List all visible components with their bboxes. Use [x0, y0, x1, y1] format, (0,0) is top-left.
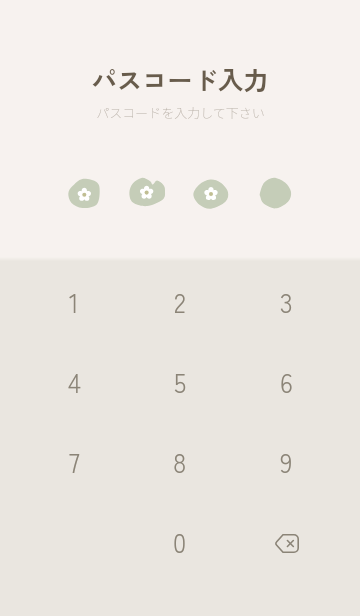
button[interactable]: 2	[127, 262, 233, 342]
staticText: 4	[68, 363, 81, 401]
button[interactable]: Backspace	[233, 502, 339, 582]
staticText: パスコード入力	[91, 61, 269, 98]
button[interactable]: 9	[233, 422, 339, 502]
other: Backspace	[274, 534, 299, 553]
button[interactable]: 7	[21, 422, 127, 502]
staticText: 5	[174, 363, 187, 401]
staticText: パスコードを入力して下さい	[96, 103, 265, 122]
staticText: 9	[280, 443, 293, 481]
staticText: 3	[280, 283, 293, 321]
button[interactable]: 5	[127, 342, 233, 422]
staticText: 6	[280, 363, 293, 401]
button[interactable]: 3	[233, 262, 339, 342]
staticText: 7	[69, 443, 80, 481]
button[interactable]: 4	[21, 342, 127, 422]
staticText: 0	[173, 523, 187, 561]
button[interactable]: 1	[21, 262, 127, 342]
button[interactable]: 6	[233, 342, 339, 422]
button[interactable]: 0	[127, 502, 233, 582]
button[interactable]: 8	[127, 422, 233, 502]
staticText: 1	[69, 283, 79, 321]
staticText: 8	[173, 443, 187, 481]
staticText: 2	[174, 283, 186, 321]
